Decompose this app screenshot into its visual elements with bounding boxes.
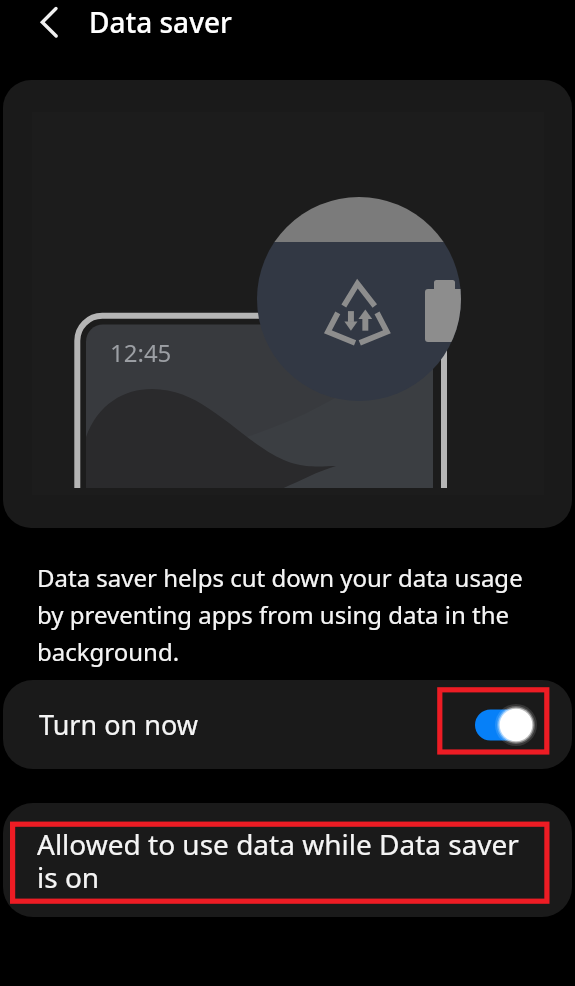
staticText: Allowed to use data while Data saver is … xyxy=(37,825,529,896)
button[interactable]: Data saver toggle xyxy=(475,706,533,744)
button[interactable]: Turn on now xyxy=(3,680,572,769)
button[interactable]: Allowed to use data while Data saver is … xyxy=(3,803,572,917)
button[interactable]: Navigate up xyxy=(26,0,72,46)
staticText: Turn on now xyxy=(39,706,198,743)
staticText: Data saver xyxy=(89,3,232,41)
staticText: Data saver helps cut down your data usag… xyxy=(37,561,532,668)
staticText: 12:45 xyxy=(110,336,172,369)
